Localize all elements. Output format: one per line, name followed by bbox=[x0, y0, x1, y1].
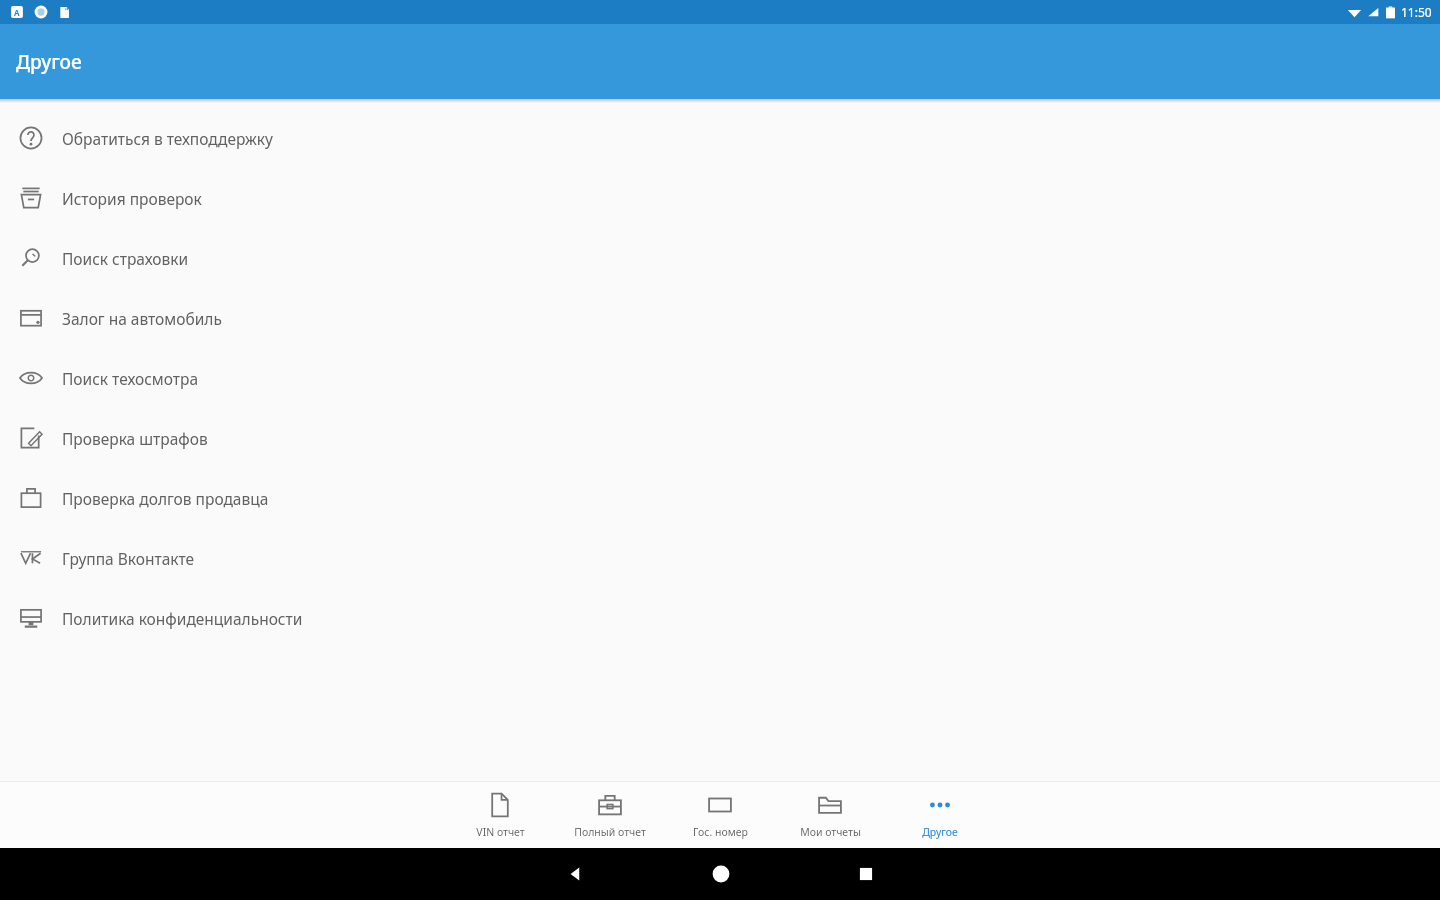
staticText: Политика конфиденциальности bbox=[62, 608, 303, 629]
staticText: Проверка долгов продавца bbox=[62, 488, 269, 509]
button[interactable]: Гос. номер bbox=[665, 782, 775, 848]
button[interactable]: Залог на автомобиль bbox=[0, 288, 1440, 348]
staticText: Поиск техосмотра bbox=[62, 368, 199, 389]
button[interactable]: Политика конфиденциальности bbox=[0, 588, 1440, 648]
button[interactable]: Поиск техосмотра bbox=[0, 348, 1440, 408]
button[interactable]: Back bbox=[503, 848, 648, 900]
button[interactable]: VIN отчет bbox=[445, 782, 555, 848]
staticText: Проверка штрафов bbox=[62, 428, 208, 449]
button[interactable]: Проверка штрафов bbox=[0, 408, 1440, 468]
staticText: 11:50 bbox=[1401, 4, 1432, 20]
staticText: Поиск страховки bbox=[62, 248, 189, 269]
staticText: Другое bbox=[16, 49, 82, 75]
button[interactable]: Группа Вконтакте bbox=[0, 528, 1440, 588]
button[interactable]: Полный отчет bbox=[555, 782, 665, 848]
staticText: История проверок bbox=[62, 188, 202, 209]
button[interactable]: Home bbox=[648, 848, 793, 900]
staticText: Залог на автомобиль bbox=[62, 308, 222, 329]
staticText: Обратиться в техподдержку bbox=[62, 128, 273, 149]
staticText: Гос. номер bbox=[693, 825, 748, 839]
staticText: A bbox=[14, 7, 20, 18]
button[interactable]: Recent apps bbox=[793, 848, 938, 900]
button[interactable]: История проверок bbox=[0, 168, 1440, 228]
staticText: Группа Вконтакте bbox=[62, 548, 195, 569]
button[interactable]: Поиск страховки bbox=[0, 228, 1440, 288]
staticText: Полный отчет bbox=[574, 825, 646, 839]
staticText: VIN отчет bbox=[476, 825, 525, 839]
button[interactable]: Проверка долгов продавца bbox=[0, 468, 1440, 528]
button[interactable]: Обратиться в техподдержку bbox=[0, 108, 1440, 168]
staticText: Другое bbox=[922, 825, 958, 839]
button[interactable]: Другое bbox=[885, 782, 995, 848]
staticText: Мои отчеты bbox=[800, 825, 861, 839]
button[interactable]: Мои отчеты bbox=[775, 782, 885, 848]
